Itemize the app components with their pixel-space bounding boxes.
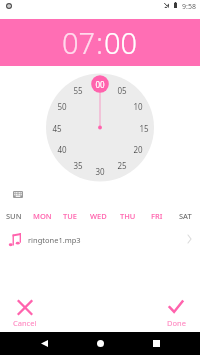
staticText: WED — [90, 211, 107, 221]
staticText: Cancel — [13, 318, 37, 328]
button[interactable]: TUE — [56, 208, 84, 223]
button[interactable]: Home — [88, 332, 112, 355]
staticText: 00 — [95, 79, 105, 90]
staticText: SUN — [6, 211, 22, 221]
button[interactable]: Back — [32, 332, 56, 355]
staticText: 25 — [117, 160, 127, 171]
staticText: 05 — [117, 85, 127, 96]
staticText: SAT — [179, 211, 192, 221]
button[interactable]: Switch to text input — [13, 191, 23, 198]
button[interactable]: Recent apps — [144, 332, 168, 355]
staticText: FRI — [151, 211, 163, 221]
button[interactable]: 07 — [62, 23, 96, 62]
button[interactable]: THU — [113, 208, 142, 223]
staticText: 55 — [73, 85, 83, 96]
button[interactable]: Cancel — [9, 299, 41, 331]
button[interactable]: 00 — [104, 23, 138, 62]
staticText: Done — [167, 318, 186, 328]
staticText: 40 — [57, 144, 67, 155]
button[interactable]: ringtone1.mp3 — [0, 228, 200, 252]
staticText: 45 — [52, 123, 62, 134]
staticText: 20 — [133, 144, 143, 155]
staticText: TUE — [63, 211, 77, 221]
staticText: ringtone1.mp3 — [28, 235, 81, 245]
button[interactable]: Done — [160, 299, 192, 331]
staticText: 30 — [95, 166, 105, 177]
staticText: THU — [120, 211, 136, 221]
staticText: 10 — [133, 101, 143, 112]
button[interactable]: WED — [84, 208, 113, 223]
button[interactable]: SAT — [171, 208, 200, 223]
staticText: 50 — [57, 101, 67, 112]
staticText: MON — [33, 211, 52, 221]
button[interactable]: MON — [28, 208, 56, 223]
staticText: 35 — [73, 160, 83, 171]
staticText: : — [96, 23, 104, 62]
staticText: 9:58 — [182, 2, 196, 12]
staticText: 15 — [139, 123, 149, 134]
button[interactable]: FRI — [142, 208, 171, 223]
button[interactable]: SUN — [0, 208, 28, 223]
